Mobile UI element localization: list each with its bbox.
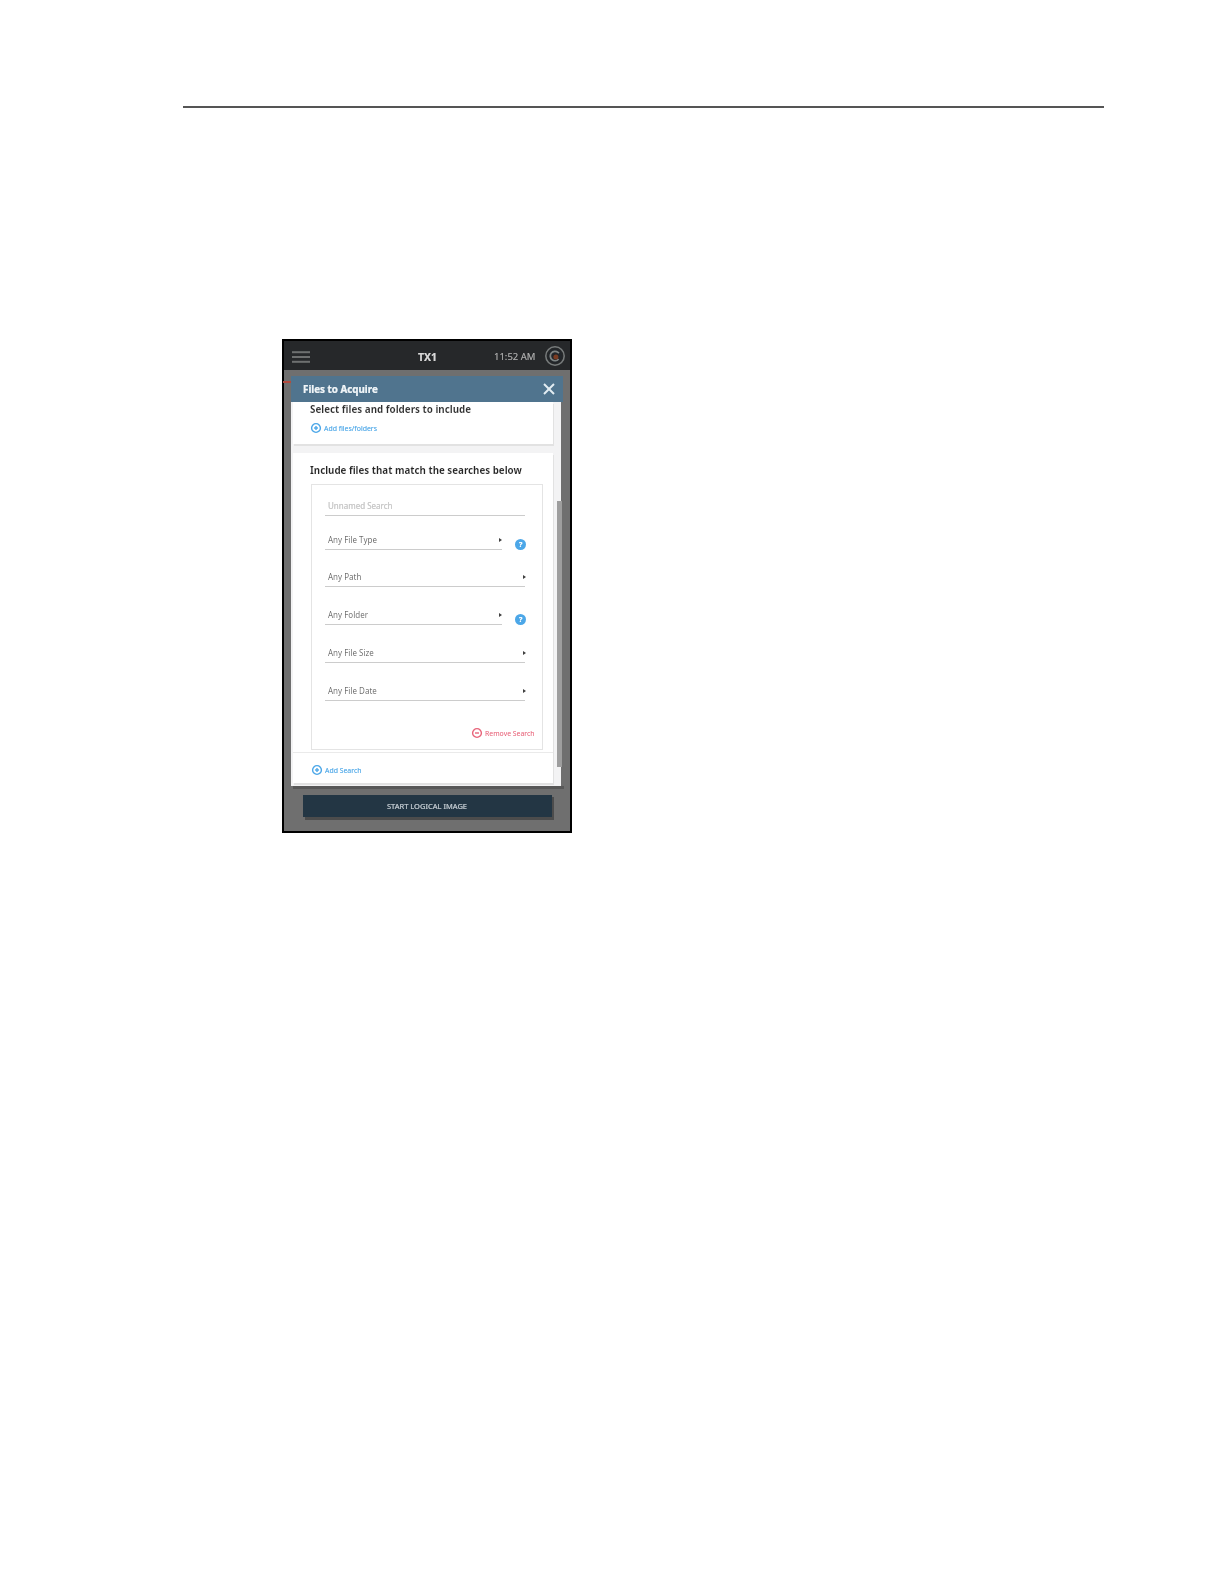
staticText: Unnamed Search	[328, 500, 393, 511]
staticText: Any File Size	[328, 647, 374, 658]
staticText: TX1	[418, 350, 438, 364]
button[interactable]: Any Folder	[325, 605, 506, 625]
button[interactable]: Add files/folders	[311, 423, 377, 433]
button[interactable]: Help	[515, 539, 526, 550]
button[interactable]: Any File Date	[325, 681, 529, 701]
button[interactable]: Help	[515, 614, 526, 625]
staticText: Select files and folders to include	[310, 403, 472, 416]
button[interactable]: Unnamed Search	[325, 496, 529, 516]
staticText: Any Path	[328, 571, 362, 582]
button[interactable]: Any File Size	[325, 643, 529, 663]
button[interactable]: Any File Type	[325, 530, 506, 550]
staticText: Add Search	[325, 766, 362, 775]
button[interactable]: Close dialog	[536, 376, 562, 402]
staticText: Any File Type	[328, 534, 377, 545]
staticText: ?	[519, 540, 523, 550]
staticText: 11:52 AM	[494, 350, 536, 363]
button[interactable]: Open navigation menu	[292, 350, 310, 363]
staticText: ?	[519, 615, 523, 625]
button[interactable]: Account	[545, 346, 565, 366]
button[interactable]: Any Path	[325, 567, 529, 587]
staticText: Files to Acquire	[303, 383, 378, 396]
staticText: Remove Search	[485, 729, 535, 738]
staticText: Add files/folders	[324, 424, 377, 433]
button[interactable]: Remove Search	[472, 728, 535, 738]
button[interactable]: Add Search	[312, 765, 362, 775]
staticText: START LOGICAL IMAGE	[387, 801, 468, 811]
button[interactable]: START LOGICAL IMAGE	[303, 795, 552, 817]
staticText: Any File Date	[328, 685, 377, 696]
staticText: Any Folder	[328, 609, 369, 620]
staticText: Include files that match the searches be…	[310, 464, 522, 477]
